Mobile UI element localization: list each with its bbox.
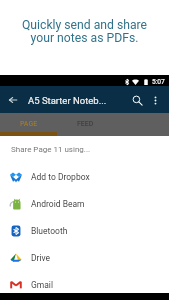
- button[interactable]: Drive: [0, 244, 169, 271]
- button[interactable]: Android Beam: [0, 190, 169, 217]
- staticText: Quickly send and share your notes as PDF…: [0, 18, 169, 45]
- staticText: FEED: [77, 120, 94, 128]
- staticText: Drive: [31, 253, 51, 263]
- staticText: Bluetooth: [31, 226, 68, 236]
- staticText: Android Beam: [31, 199, 85, 209]
- staticText: Share Page 11 using...: [11, 145, 91, 154]
- button[interactable]: Search: [127, 90, 147, 110]
- staticText: PAGE: [20, 120, 38, 128]
- button[interactable]: PAGE: [0, 113, 57, 136]
- button[interactable]: Gmail: [0, 271, 169, 298]
- staticText: Add to Dropbox: [31, 172, 90, 182]
- button[interactable]: Back: [4, 91, 22, 109]
- button[interactable]: FEED: [57, 113, 114, 136]
- staticText: Gmail: [31, 280, 54, 290]
- button[interactable]: More options: [146, 91, 164, 109]
- button[interactable]: Bluetooth: [0, 217, 169, 244]
- staticText: A5 Starter Noteb...: [28, 95, 107, 106]
- button[interactable]: Add to Dropbox: [0, 163, 169, 190]
- staticText: 5:07: [152, 78, 165, 86]
